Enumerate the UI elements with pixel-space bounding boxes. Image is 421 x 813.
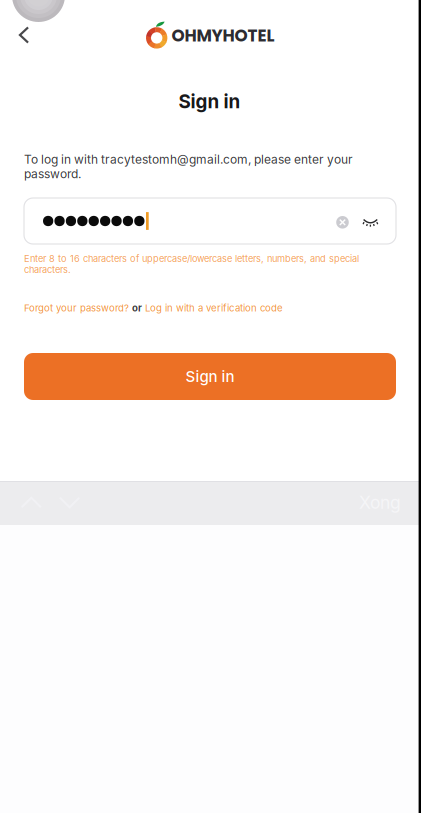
button[interactable]: Show password (353, 205, 387, 241)
staticText: Enter 8 to 16 characters of uppercase/lo… (24, 253, 359, 275)
staticText: or (132, 302, 142, 314)
button[interactable]: Previous field (11, 480, 51, 524)
button[interactable]: Next field (50, 480, 90, 524)
staticText: Sign in (178, 90, 240, 113)
staticText: Log in with a verification code (145, 302, 283, 314)
button[interactable]: Forgot your password? (24, 302, 129, 314)
button[interactable]: Log in with a verification code (145, 302, 283, 314)
staticText: Sign in (185, 367, 234, 386)
button[interactable]: Clear password (326, 204, 358, 240)
button[interactable]: Sign in (24, 353, 396, 400)
staticText: To log in with tracytestomh@gmail.com, p… (24, 152, 353, 181)
staticText: Forgot your password? (24, 302, 129, 314)
button[interactable]: Xong (343, 480, 417, 524)
staticText: OHMYHOTEL (171, 24, 274, 47)
button[interactable]: Back (2, 13, 46, 57)
